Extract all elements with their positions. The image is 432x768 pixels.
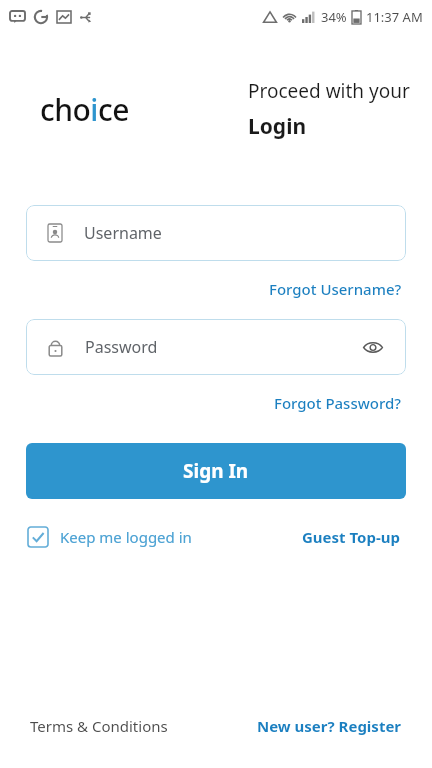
button[interactable]: Forgot Username? [265,277,406,301]
staticText: Proceed with your [248,78,410,104]
button[interactable]: Keep me logged in [28,527,192,547]
staticText: Forgot Username? [269,279,402,299]
button[interactable]: Sign In [26,443,406,499]
staticText: Sign In [183,458,249,484]
staticText: Terms & Conditions [30,716,168,736]
staticText: 11:37 AM [366,8,423,26]
button[interactable]: Show password [358,332,388,362]
staticText: Forgot Password? [274,393,402,413]
button[interactable]: Guest Top-up [298,525,404,549]
staticText: Keep me logged in [60,527,192,547]
staticText: Guest Top-up [302,527,400,547]
button[interactable]: Username [26,205,406,261]
staticText: Login [248,112,307,141]
staticText: New user? Register [257,716,402,736]
staticText: choice [40,89,129,130]
button[interactable]: Forgot Password? [270,391,406,415]
button[interactable]: New user? Register [253,712,406,740]
staticText: Username [84,222,162,244]
button[interactable]: Password [26,319,406,375]
staticText: Password [85,336,158,358]
button[interactable]: Terms & Conditions [26,712,172,740]
staticText: 34% [321,8,347,26]
